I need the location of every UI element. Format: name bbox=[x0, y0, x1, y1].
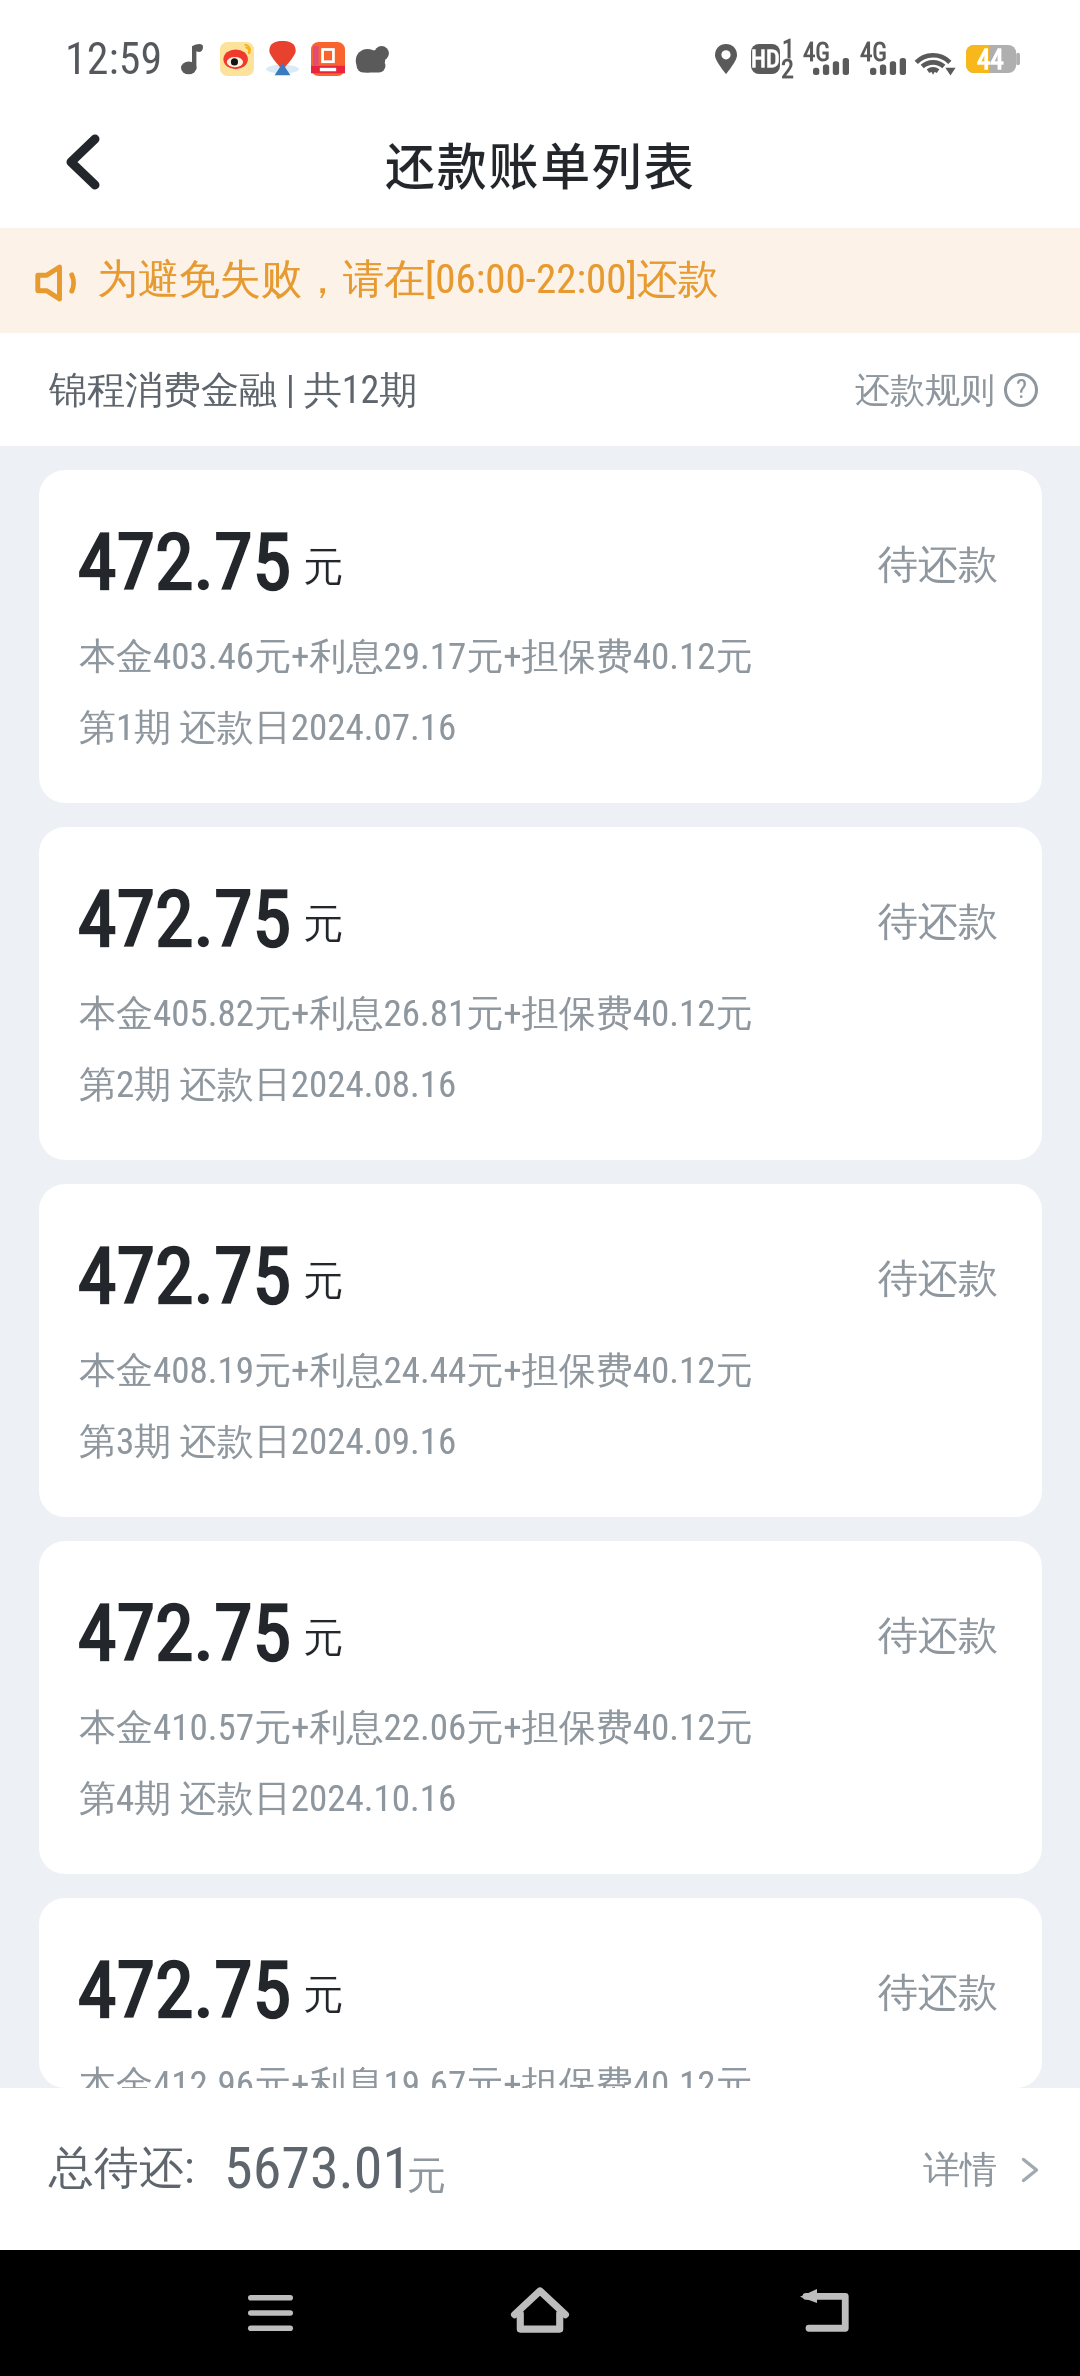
button[interactable]: 472.75 bbox=[39, 1184, 1042, 1517]
staticText: 12:59 bbox=[65, 33, 163, 85]
button[interactable]: Back bbox=[734, 2250, 914, 2376]
staticText: 元 bbox=[303, 898, 343, 948]
staticText: 待还款 bbox=[878, 1610, 998, 1660]
staticText: 4G bbox=[803, 38, 831, 67]
staticText: 待还款 bbox=[878, 896, 998, 946]
button[interactable]: Home bbox=[450, 2250, 630, 2376]
staticText: 元 bbox=[303, 541, 343, 591]
staticText: 元 bbox=[303, 1612, 343, 1662]
staticText: 第4期 还款日2024.10.16 bbox=[79, 1775, 457, 1822]
staticText: 元 bbox=[407, 2151, 446, 2200]
button[interactable]: 472.75 bbox=[39, 1541, 1042, 1874]
staticText: 本金408.19元+利息24.44元+担保费40.12元 bbox=[79, 1347, 753, 1394]
staticText: 472.75 bbox=[78, 1945, 292, 2036]
staticText: 元 bbox=[303, 1969, 343, 2019]
button[interactable]: 详情 bbox=[923, 2146, 1038, 2193]
button[interactable]: 472.75 bbox=[39, 1898, 1042, 2088]
staticText: 本金403.46元+利息29.17元+担保费40.12元 bbox=[79, 633, 753, 680]
staticText: 472.75 bbox=[78, 517, 292, 608]
staticText: ? bbox=[1016, 374, 1027, 404]
staticText: 2 bbox=[781, 54, 794, 84]
staticText: 472.75 bbox=[78, 1588, 292, 1679]
staticText: 待还款 bbox=[878, 1967, 998, 2017]
staticText: 44 bbox=[977, 44, 1004, 72]
staticText: 第1期 还款日2024.07.16 bbox=[79, 704, 457, 751]
staticText: 元 bbox=[303, 1255, 343, 1305]
staticText: 详情 bbox=[923, 2146, 997, 2193]
staticText: 472.75 bbox=[78, 1231, 292, 1322]
staticText: 待还款 bbox=[878, 1253, 998, 1303]
staticText: 5673.01 bbox=[224, 2134, 412, 2202]
staticText: 第2期 还款日2024.08.16 bbox=[79, 1061, 457, 1108]
button[interactable]: Recent apps bbox=[180, 2250, 360, 2376]
staticText: 总待还: bbox=[49, 2140, 195, 2197]
button[interactable]: 还款规则 bbox=[852, 333, 1062, 446]
button[interactable]: 472.75 bbox=[39, 470, 1042, 803]
staticText: 锦程消费金融 | 共12期 bbox=[49, 366, 418, 414]
button[interactable]: 472.75 bbox=[39, 827, 1042, 1160]
staticText: 待还款 bbox=[878, 539, 998, 589]
staticText: 为避免失败，请在[06:00-22:00]还款 bbox=[97, 254, 719, 306]
staticText: 本金412.96元+利息19.67元+担保费40.12元 bbox=[79, 2061, 753, 2088]
staticText: 还款规则 bbox=[855, 368, 995, 412]
staticText: 第3期 还款日2024.09.16 bbox=[79, 1418, 457, 1465]
button[interactable]: 返回 bbox=[38, 122, 128, 212]
staticText: HD bbox=[751, 45, 780, 73]
staticText: 472.75 bbox=[78, 874, 292, 965]
staticText: 4G bbox=[860, 38, 888, 67]
staticText: 本金410.57元+利息22.06元+担保费40.12元 bbox=[79, 1704, 753, 1751]
staticText: 1 bbox=[782, 34, 795, 64]
staticText: 本金405.82元+利息26.81元+担保费40.12元 bbox=[79, 990, 753, 1037]
staticText: 还款账单列表 bbox=[385, 127, 696, 199]
